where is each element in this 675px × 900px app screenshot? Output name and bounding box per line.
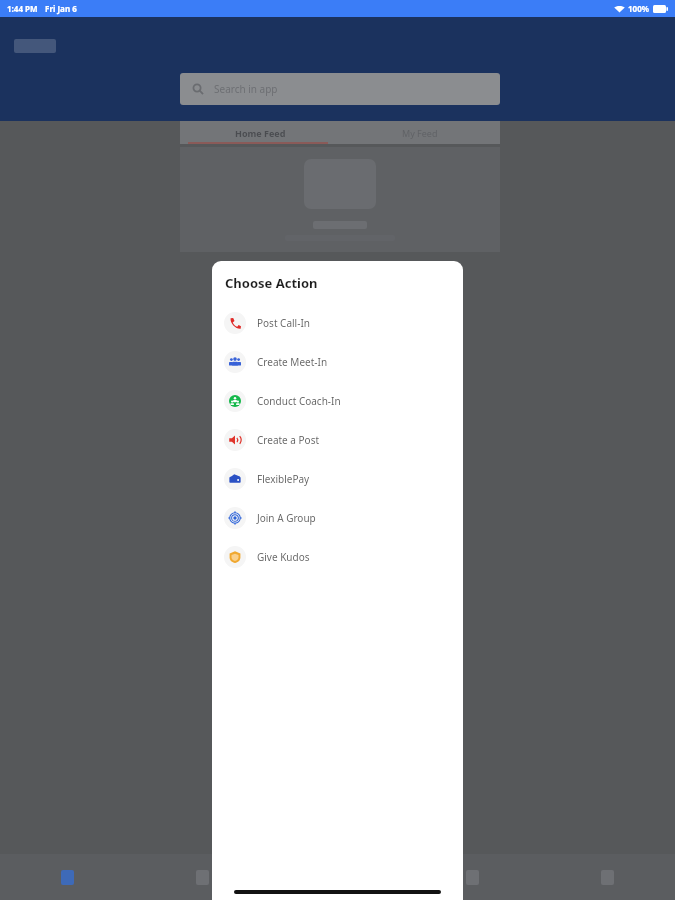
button[interactable]: Create a Post (212, 420, 463, 459)
staticText: Create Meet-In (257, 355, 328, 369)
button[interactable]: FlexiblePay (212, 459, 463, 498)
staticText: 100% (628, 3, 649, 14)
staticText: Home Feed (235, 127, 286, 139)
button[interactable]: Tab 5 (540, 854, 675, 900)
staticText: 1:44 PM (7, 3, 38, 14)
staticText: Search in app (214, 82, 278, 96)
staticText: Post Call-In (257, 316, 310, 330)
button[interactable]: Post Call-In (212, 303, 463, 342)
staticText: Create a Post (257, 433, 320, 447)
button[interactable]: Join A Group (212, 498, 463, 537)
button[interactable]: Create Meet-In (212, 342, 463, 381)
staticText: Join A Group (257, 511, 316, 525)
button[interactable]: Tab 2 (135, 854, 270, 900)
staticText: Fri Jan 6 (45, 3, 77, 14)
staticText: Choose Action (225, 274, 318, 292)
button[interactable]: Tab 1 (0, 854, 135, 900)
button[interactable]: Search (180, 73, 500, 105)
button[interactable]: Tab 4 (405, 854, 540, 900)
staticText: My Feed (402, 127, 438, 139)
staticText: FlexiblePay (257, 472, 310, 486)
button[interactable]: Give Kudos (212, 537, 463, 576)
button[interactable]: Tab 3 (270, 854, 405, 900)
staticText: Conduct Coach-In (257, 394, 341, 408)
staticText: Give Kudos (257, 550, 310, 564)
button[interactable]: Conduct Coach-In (212, 381, 463, 420)
